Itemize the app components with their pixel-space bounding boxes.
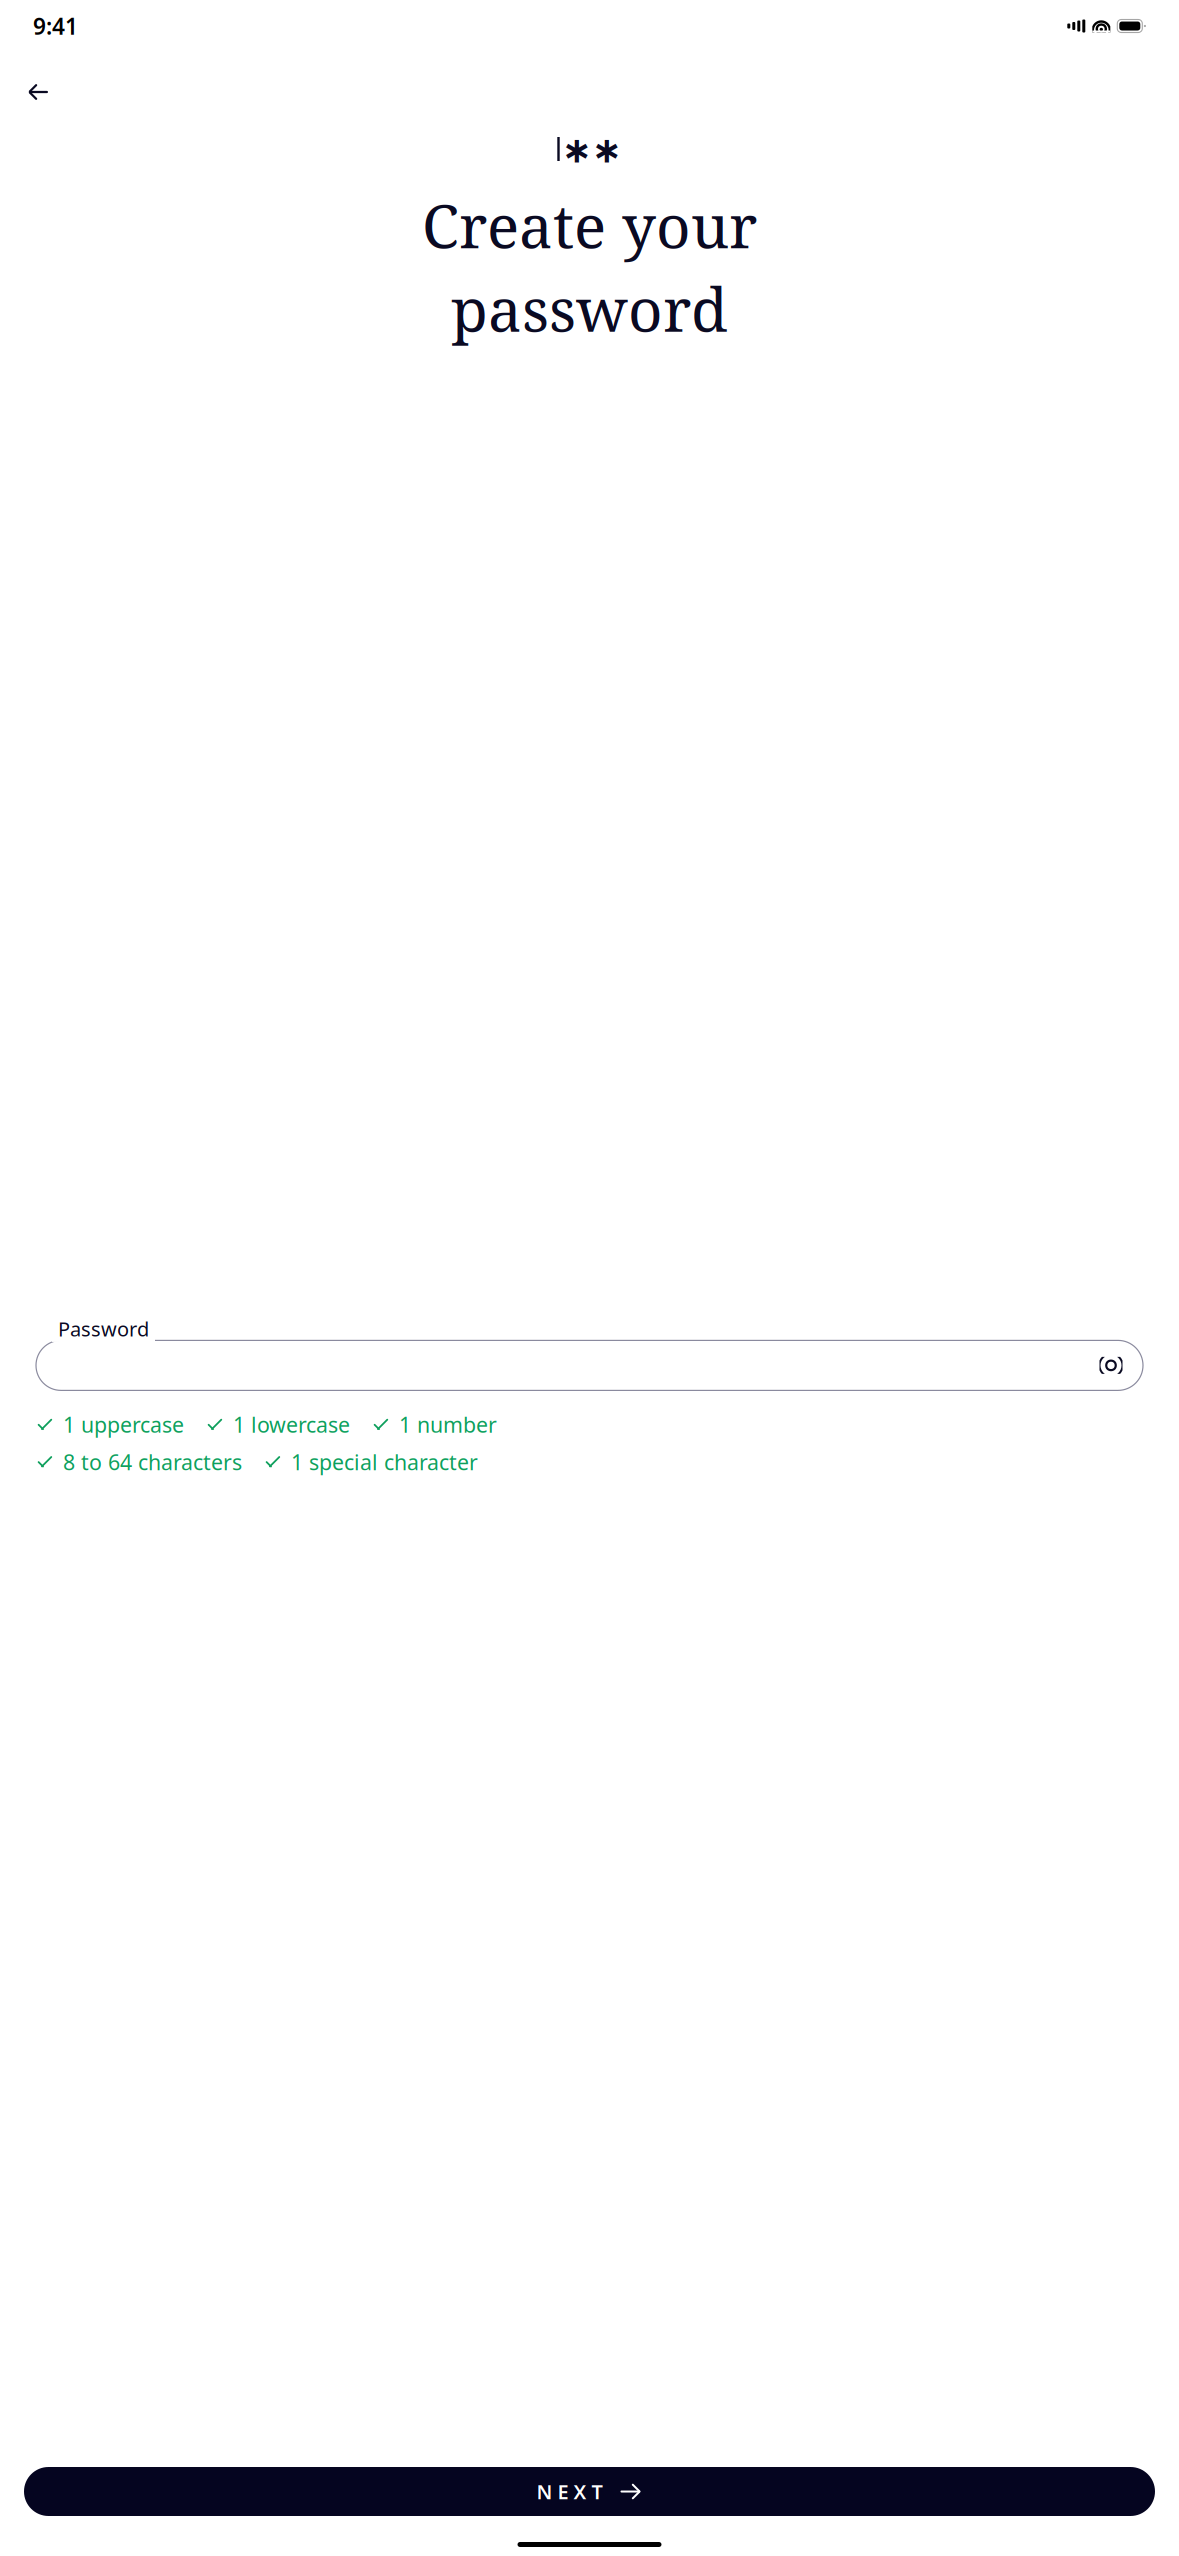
button[interactable]: N E X T	[24, 2467, 1155, 2516]
staticText: 8 to 64 characters	[63, 1448, 242, 1476]
button[interactable]: Back	[16, 70, 60, 114]
staticText: 9:41	[33, 11, 78, 41]
staticText: Password	[58, 1315, 149, 1342]
staticText: password	[451, 268, 728, 349]
staticText: N E X T	[536, 2478, 602, 2505]
staticText: Create your	[422, 184, 757, 266]
button[interactable]: Show password	[1091, 1345, 1131, 1385]
staticText: 1 uppercase	[63, 1410, 184, 1439]
staticText: 1 number	[399, 1410, 497, 1439]
staticText: ∗∗	[562, 130, 622, 170]
staticText: 1 special character	[291, 1448, 478, 1476]
staticText: 1 lowercase	[233, 1410, 350, 1439]
